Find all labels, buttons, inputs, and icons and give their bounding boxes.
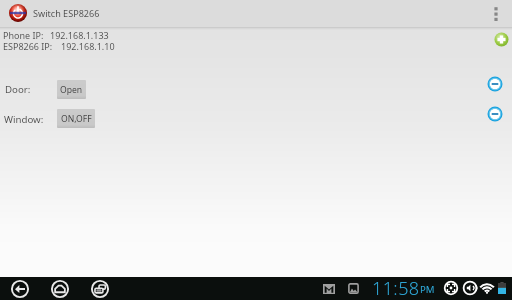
button[interactable]: Battery <box>496 280 508 296</box>
button[interactable]: Recent apps <box>88 277 112 300</box>
button[interactable]: Add <box>494 32 509 47</box>
staticText: Switch ESP8266 <box>33 7 100 19</box>
button[interactable]: Gmail notification <box>322 282 336 295</box>
button[interactable]: Home <box>48 277 72 300</box>
staticText: ESP8266 IP: <box>3 40 53 52</box>
staticText: Window: <box>4 113 44 126</box>
staticText: PM <box>420 283 435 296</box>
staticText: Open <box>60 84 83 96</box>
staticText: 11:58 <box>372 276 420 299</box>
button[interactable]: Wi-Fi <box>479 280 494 296</box>
staticText: Phone IP: <box>3 29 44 41</box>
button[interactable]: Screenshot captured <box>347 282 360 295</box>
staticText: 192.168.1.10 <box>61 40 115 52</box>
staticText: Door: <box>5 83 31 96</box>
button[interactable]: Back <box>8 277 32 300</box>
button[interactable]: Volume <box>462 280 478 296</box>
button[interactable]: Open <box>57 80 86 99</box>
button[interactable]: Remove <box>487 106 503 122</box>
button[interactable]: Remove <box>487 76 503 92</box>
button[interactable]: More options <box>482 0 510 27</box>
button[interactable]: Location <box>443 280 459 296</box>
staticText: 192.168.1.133 <box>50 29 109 41</box>
staticText: ON,OFF <box>61 113 92 125</box>
button[interactable]: ON,OFF <box>57 109 95 128</box>
